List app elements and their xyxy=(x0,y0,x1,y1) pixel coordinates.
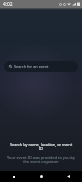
button[interactable]: Search for an event xyxy=(4,61,78,72)
staticText: Search by name, location, or event ID xyxy=(8,142,74,151)
button[interactable]: Back xyxy=(55,171,82,182)
button[interactable]: Recent apps xyxy=(0,171,28,182)
button[interactable]: Home xyxy=(28,171,55,182)
staticText: 4:02 xyxy=(3,1,13,8)
staticText: Search for an event xyxy=(14,64,49,69)
staticText: Your event ID was provided to you by the… xyxy=(5,155,77,165)
